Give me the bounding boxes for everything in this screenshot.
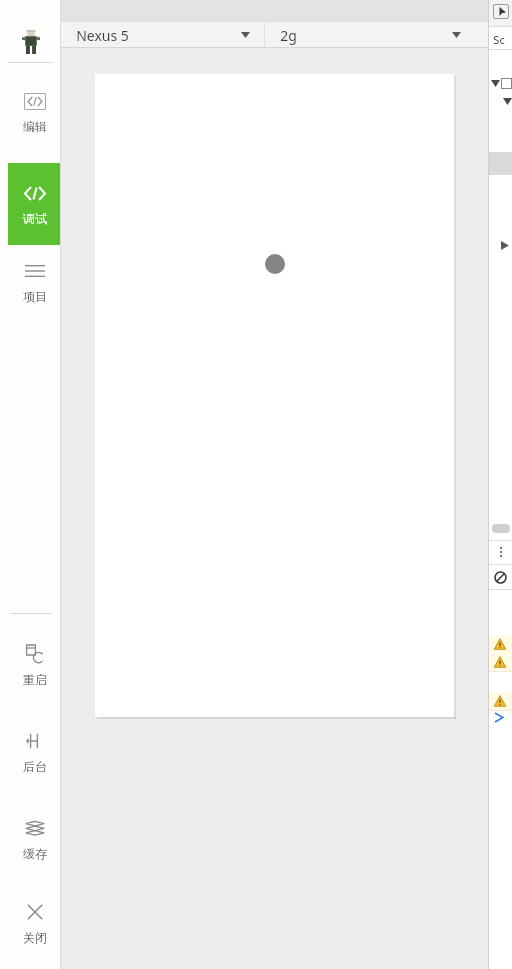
button[interactable]: More options: [489, 541, 512, 563]
button[interactable]: 重启: [8, 635, 61, 695]
button[interactable]: 关闭: [8, 893, 61, 953]
staticText: 2g: [280, 26, 297, 45]
button[interactable]: 编辑: [8, 82, 61, 142]
button[interactable]: Inspect element: [493, 4, 509, 19]
button[interactable]: 项目: [8, 252, 61, 312]
staticText: 重启: [23, 672, 47, 687]
staticText: Nexus 5: [76, 26, 129, 45]
button[interactable]: User avatar: [0, 22, 61, 62]
button[interactable]: 后台: [8, 722, 61, 782]
button[interactable]: Sc: [489, 30, 512, 48]
button[interactable]: 2g: [265, 22, 475, 48]
staticText: 缓存: [23, 846, 47, 861]
staticText: 后台: [23, 759, 47, 774]
staticText: 关闭: [23, 930, 47, 945]
button[interactable]: 调试: [8, 163, 61, 245]
staticText: Sc: [493, 32, 505, 47]
button[interactable]: 缓存: [8, 809, 61, 869]
button[interactable]: Nexus 5: [61, 22, 264, 48]
staticText: 项目: [23, 289, 47, 304]
staticText: 编辑: [23, 119, 47, 134]
button[interactable]: Clear console: [489, 566, 512, 588]
staticText: 调试: [23, 211, 47, 226]
